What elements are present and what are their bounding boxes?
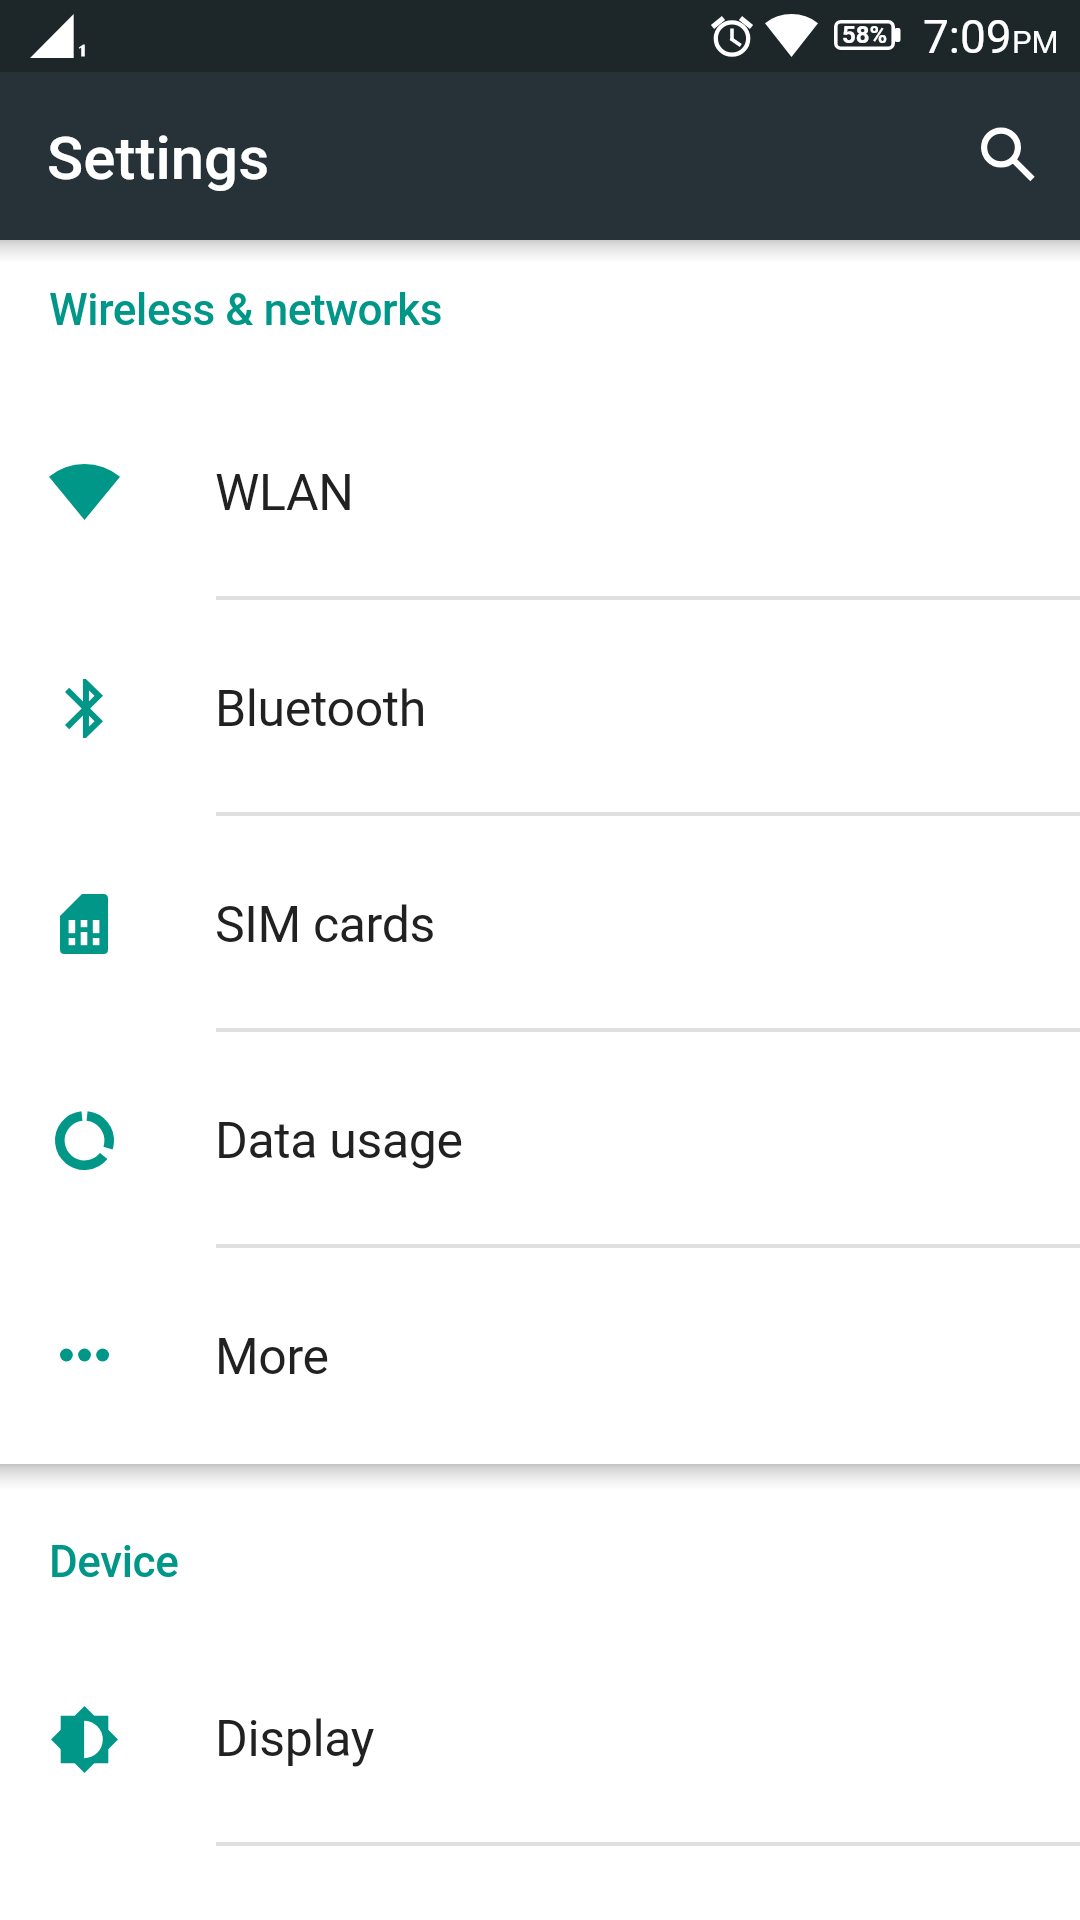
button[interactable]: SIM cards bbox=[0, 816, 1080, 1032]
button[interactable]: WLAN bbox=[0, 384, 1080, 600]
button[interactable]: More bbox=[0, 1248, 1080, 1464]
staticText: Wireless & networks bbox=[49, 284, 443, 336]
staticText: Data usage bbox=[215, 1112, 463, 1171]
button[interactable]: Display bbox=[0, 1630, 1080, 1846]
button[interactable]: Search bbox=[953, 92, 1049, 188]
staticText: Bluetooth bbox=[215, 680, 427, 739]
staticText: Display bbox=[215, 1710, 375, 1769]
staticText: WLAN bbox=[215, 464, 354, 523]
staticText: PM bbox=[1012, 24, 1059, 60]
staticText: 7:09 bbox=[923, 10, 1012, 64]
staticText: More bbox=[215, 1328, 329, 1387]
button[interactable]: Data usage bbox=[0, 1032, 1080, 1248]
staticText: 58% bbox=[842, 21, 888, 49]
staticText: Device bbox=[49, 1536, 179, 1588]
staticText: Settings bbox=[47, 123, 270, 193]
button[interactable]: Bluetooth bbox=[0, 600, 1080, 816]
staticText: SIM cards bbox=[215, 896, 436, 955]
